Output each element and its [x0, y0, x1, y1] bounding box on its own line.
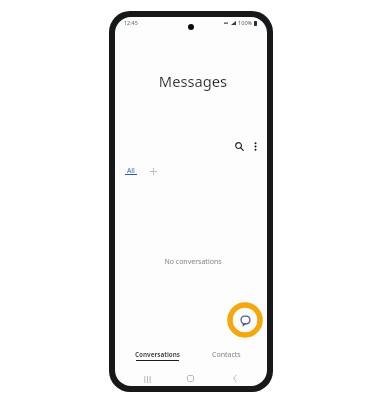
staticText: Contacts [212, 350, 241, 360]
button[interactable]: Back [226, 370, 243, 386]
button[interactable]: Search [232, 139, 248, 155]
button[interactable]: Contacts [208, 350, 244, 368]
staticText: No conversations [117, 257, 267, 267]
button[interactable]: Home [182, 370, 199, 386]
staticText: 100% [238, 19, 253, 27]
button[interactable]: Recents [139, 371, 156, 386]
button[interactable]: More options [247, 138, 263, 154]
staticText: Messages [117, 71, 267, 91]
staticText: Conversations [135, 350, 180, 359]
button[interactable]: All [122, 163, 140, 179]
staticText: All [127, 166, 135, 175]
button[interactable]: Conversations [133, 350, 181, 368]
button[interactable]: Add [147, 165, 160, 178]
staticText: 12:45 [124, 19, 138, 26]
button[interactable]: Start new conversation [225, 300, 265, 340]
